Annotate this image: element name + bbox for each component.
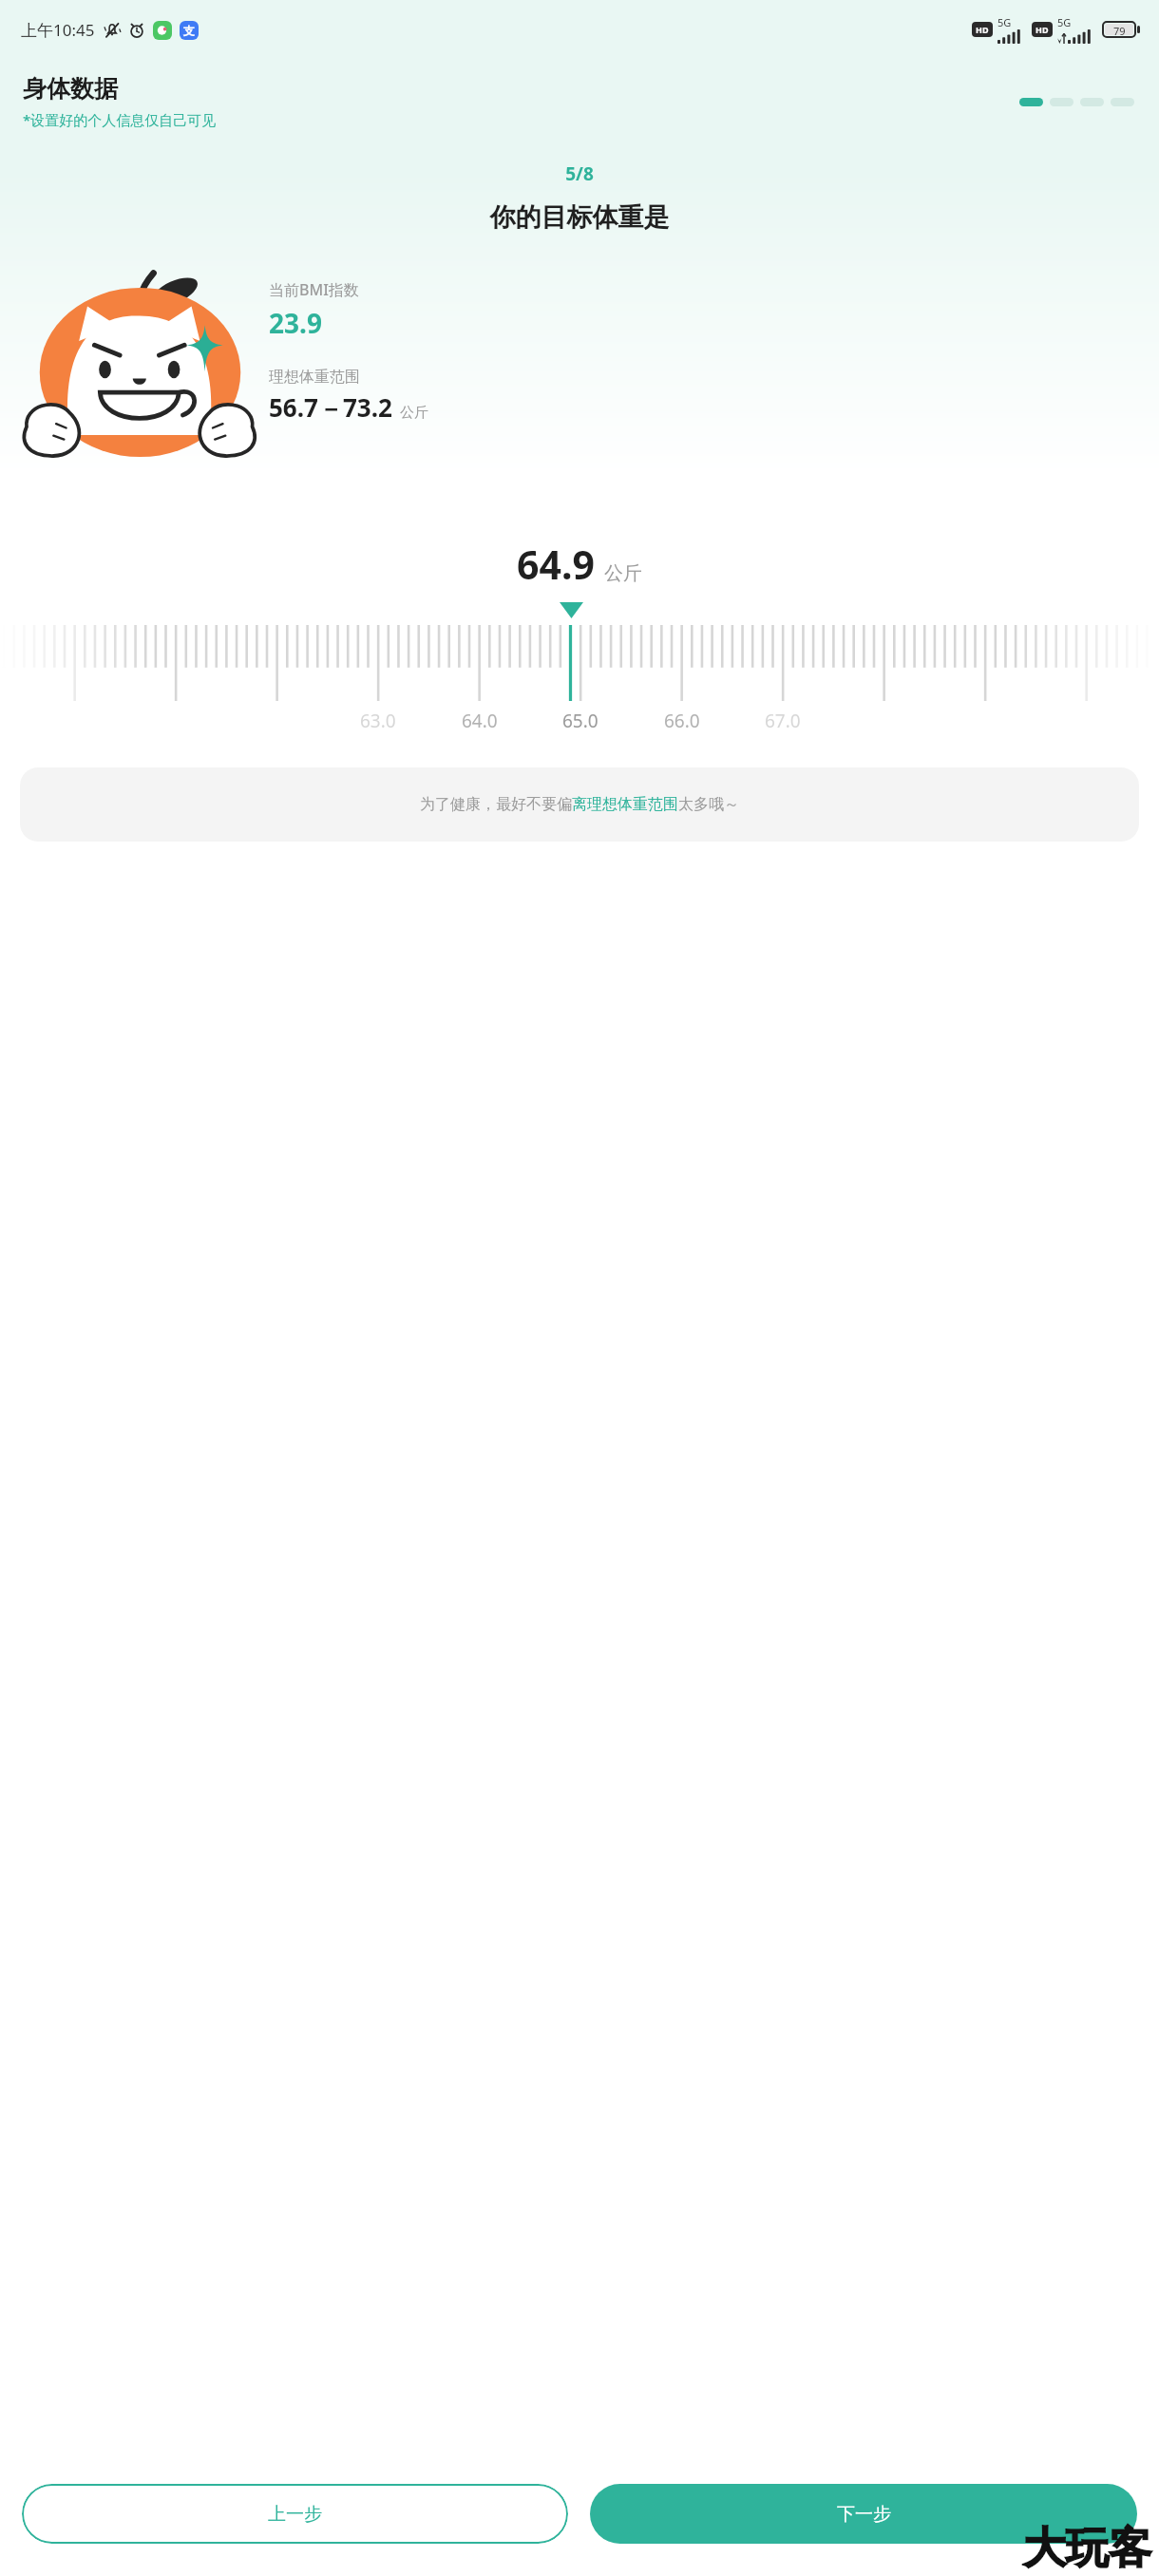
staticText: 为了健康，最好不要偏离理想体重范围太多哦～ [420, 795, 739, 814]
staticText: HD [976, 24, 989, 35]
staticText: 支 [183, 24, 195, 38]
staticText: 上一步 [268, 2503, 322, 2526]
staticText: 下一步 [837, 2503, 891, 2526]
staticText: 公斤 [400, 404, 428, 422]
staticText: 65.0 [562, 709, 598, 733]
staticText: 5/8 [0, 161, 1159, 186]
staticText: 64.9 [517, 538, 595, 591]
button[interactable] [0, 625, 1159, 701]
staticText: 56.7－73.2 [269, 390, 392, 425]
staticText: 上午10:45 [21, 19, 95, 41]
staticText: 5G [997, 15, 1012, 29]
staticText: 67.0 [765, 709, 801, 733]
staticText: 64.0 [462, 709, 498, 733]
staticText: 79 [1113, 24, 1126, 35]
other: Selected weight marker [560, 602, 583, 618]
button[interactable]: 上一步 [22, 2484, 568, 2544]
button[interactable]: 下一步 [590, 2484, 1137, 2544]
staticText: 你的目标体重是 [0, 201, 1159, 234]
staticText: HD [1035, 24, 1049, 35]
staticText: 66.0 [664, 709, 700, 733]
staticText: 理想体重范围 [269, 368, 360, 387]
staticText: *设置好的个人信息仅自己可见 [23, 110, 217, 129]
staticText: 公斤 [604, 561, 642, 585]
staticText: 当前BMI指数 [269, 279, 359, 300]
staticText: 大玩客 [1023, 2522, 1151, 2576]
staticText: 5G [1057, 15, 1072, 29]
staticText: 身体数据 [23, 74, 118, 104]
staticText: 63.0 [360, 709, 396, 733]
staticText: 23.9 [269, 305, 322, 341]
